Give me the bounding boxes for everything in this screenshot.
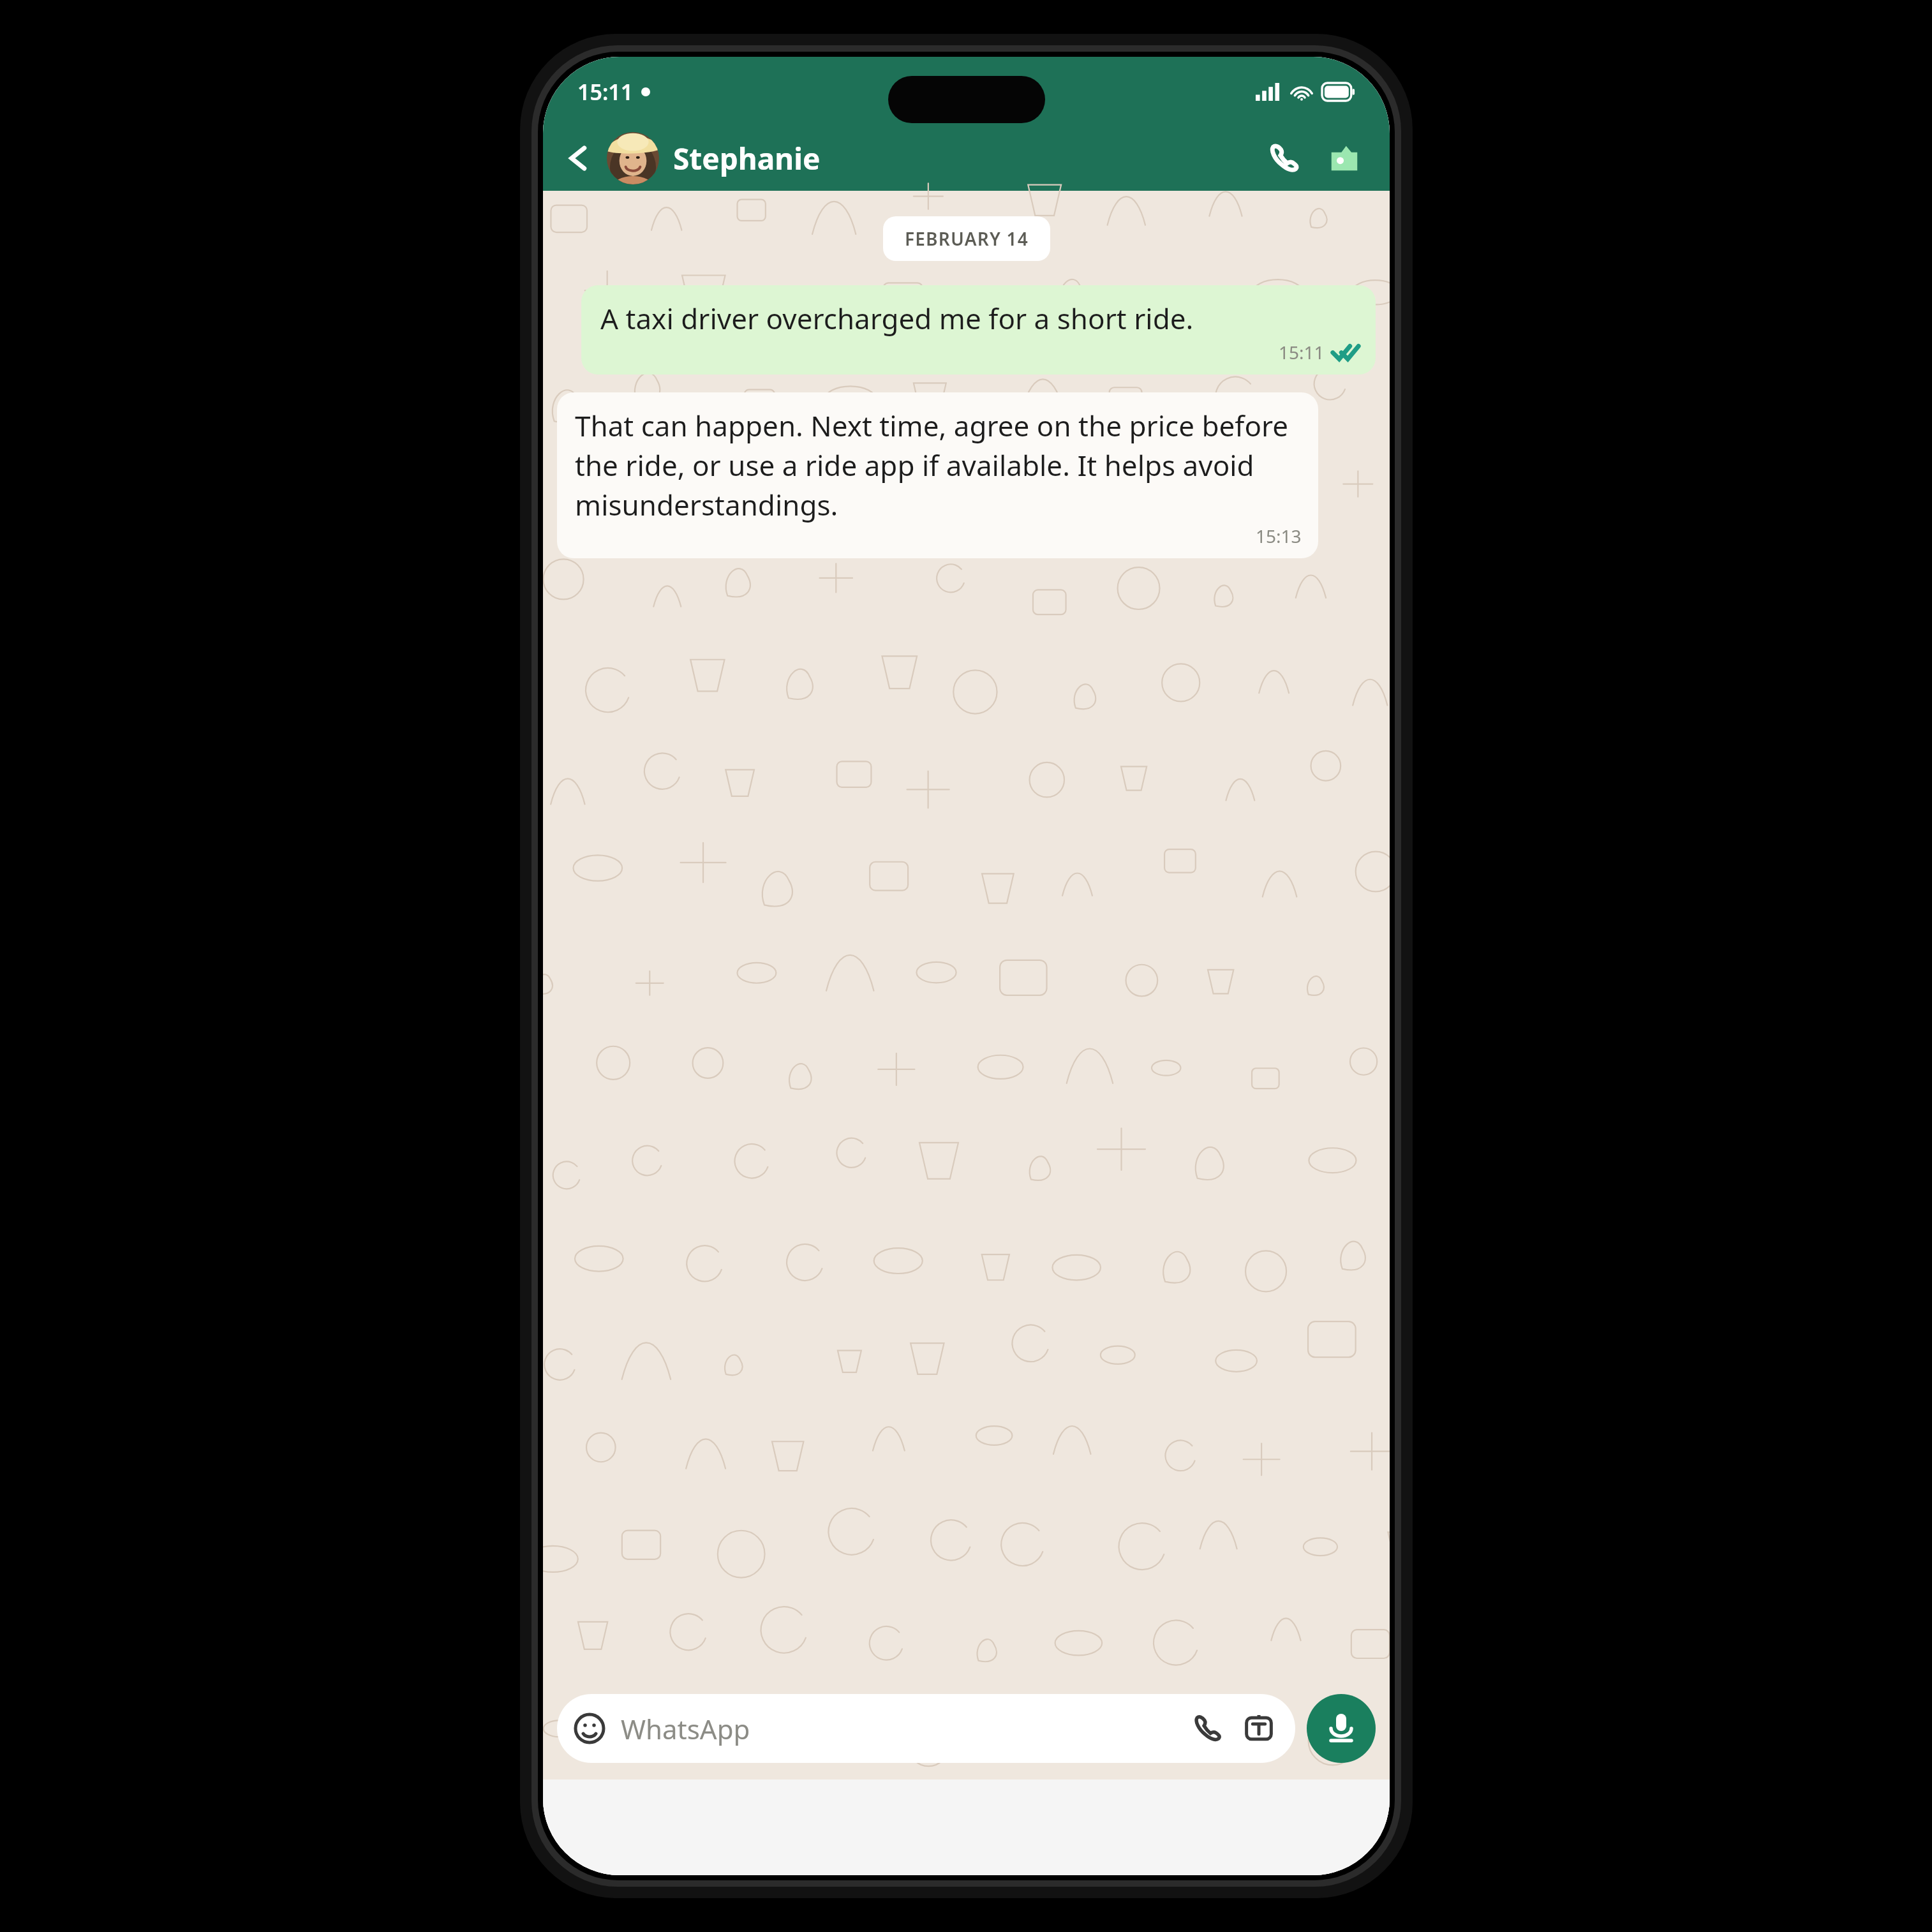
button[interactable]: Voice call [1188,1709,1228,1748]
staticText: 15:13 [1256,524,1302,548]
staticText: 15:11 [577,77,634,107]
button[interactable]: WhatsApp [557,1694,1295,1763]
button[interactable]: FEBRUARY 14 [905,227,1029,251]
staticText: 15:11 [1279,340,1325,364]
button[interactable]: Video call [1321,135,1368,182]
staticText: That can happen. Next time, agree on the… [575,406,1302,524]
button[interactable]: Stephanie [607,132,1261,184]
staticText: Stephanie [673,138,821,179]
staticText: FEBRUARY 14 [905,227,1029,251]
button[interactable]: Back [554,134,603,182]
button[interactable]: Camera [1239,1709,1279,1748]
staticText: WhatsApp [621,1711,750,1747]
button[interactable]: That can happen. Next time, agree on the… [557,392,1318,558]
button[interactable]: Record voice message [1307,1694,1376,1763]
staticText: A taxi driver overcharged me for a short… [600,299,1194,338]
button[interactable]: Call [1261,135,1308,182]
button[interactable]: A taxi driver overcharged me for a short… [581,285,1376,375]
